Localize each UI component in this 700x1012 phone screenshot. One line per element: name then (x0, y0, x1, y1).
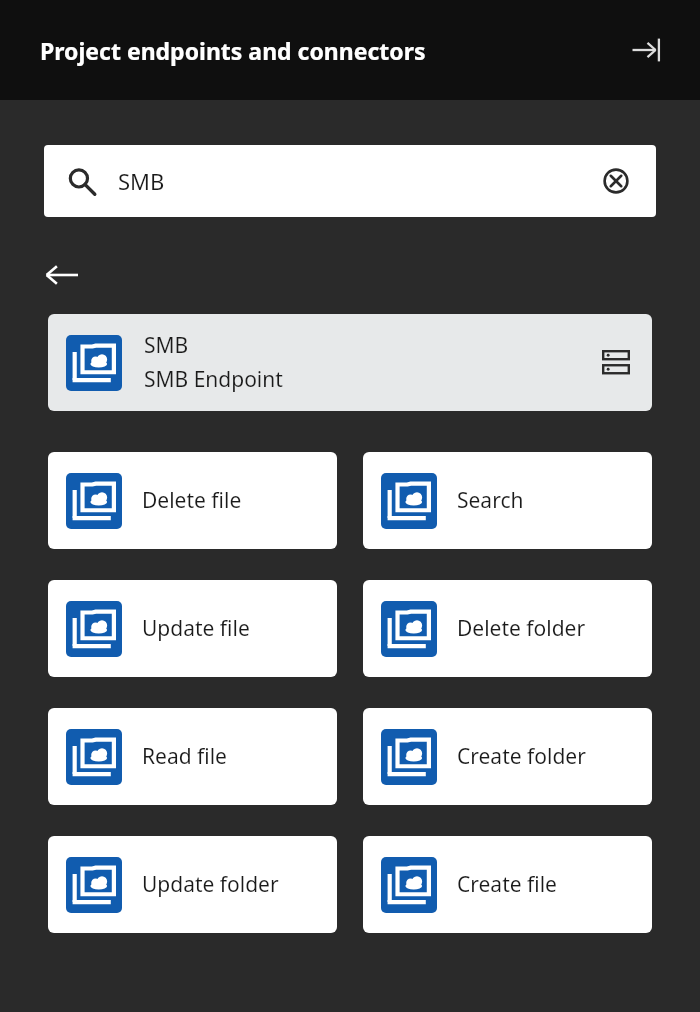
staticText: SMB (118, 166, 165, 196)
button[interactable]: SMB (44, 145, 656, 217)
button[interactable]: Endpoint server (594, 341, 638, 385)
staticText: SMB (144, 331, 189, 360)
staticText: Project endpoints and connectors (40, 35, 426, 66)
staticText: Update folder (142, 870, 279, 899)
staticText: Create folder (457, 742, 586, 771)
button[interactable]: Back (40, 257, 88, 293)
staticText: Read file (142, 742, 227, 771)
button[interactable]: Search (363, 452, 652, 549)
staticText: Delete file (142, 486, 242, 515)
button[interactable]: Delete file (48, 452, 337, 549)
button[interactable]: Update folder (48, 836, 337, 933)
staticText: SMB Endpoint (144, 365, 283, 394)
staticText: Search (457, 486, 524, 515)
staticText: Update file (142, 614, 250, 643)
button[interactable]: Create file (363, 836, 652, 933)
staticText: Create file (457, 870, 557, 899)
button[interactable]: SMB (48, 314, 652, 411)
button[interactable]: Update file (48, 580, 337, 677)
button[interactable]: Create folder (363, 708, 652, 805)
button[interactable]: Delete folder (363, 580, 652, 677)
staticText: Delete folder (457, 614, 586, 643)
button[interactable]: Collapse panel (624, 28, 668, 72)
button[interactable]: Clear search (596, 161, 636, 201)
button[interactable]: Read file (48, 708, 337, 805)
